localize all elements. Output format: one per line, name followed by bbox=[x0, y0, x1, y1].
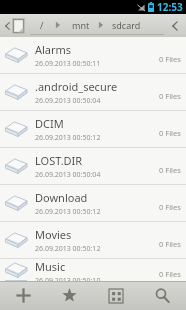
staticText: 0 Files bbox=[159, 239, 181, 249]
button[interactable]: .android_secure bbox=[0, 74, 186, 110]
staticText: 0 Files bbox=[159, 91, 181, 101]
staticText: 26.09.2013 00:50:10 bbox=[35, 276, 101, 281]
button[interactable]: Bookmarks bbox=[46, 281, 92, 310]
button[interactable]: Home bbox=[0, 14, 30, 37]
staticText: 0 Files bbox=[159, 128, 181, 138]
staticText: Alarms bbox=[35, 42, 72, 57]
staticText: 0 Files bbox=[159, 165, 181, 175]
button[interactable]: Download bbox=[0, 185, 186, 221]
staticText: Music bbox=[35, 259, 66, 274]
button[interactable]: LOST.DIR bbox=[0, 148, 186, 184]
staticText: LOST.DIR bbox=[35, 153, 83, 168]
staticText: DCIM bbox=[35, 116, 64, 131]
button[interactable]: Search bbox=[139, 281, 186, 310]
button[interactable]: sdcard bbox=[112, 19, 141, 31]
staticText: .android_secure bbox=[35, 79, 118, 94]
staticText: 26.09.2013 00:50:11 bbox=[35, 59, 101, 69]
button[interactable]: View mode bbox=[92, 281, 139, 310]
staticText: 12:53 bbox=[157, 0, 183, 14]
staticText: 0 Files bbox=[159, 269, 181, 279]
staticText: 0 Files bbox=[159, 54, 181, 64]
staticText: 26.09.2013 00:50:04 bbox=[35, 170, 101, 180]
staticText: 26.09.2013 00:50:12 bbox=[35, 207, 101, 217]
staticText: 26.09.2013 00:50:12 bbox=[35, 244, 101, 254]
staticText: 26.09.2013 00:50:04 bbox=[35, 96, 101, 106]
staticText: 26.09.2013 00:50:12 bbox=[35, 133, 101, 143]
staticText: Download bbox=[35, 190, 88, 205]
staticText: 0 Files bbox=[159, 202, 181, 212]
button[interactable]: Add bbox=[0, 281, 46, 310]
button[interactable]: DCIM bbox=[0, 111, 186, 147]
staticText: Movies bbox=[35, 227, 72, 242]
button[interactable]: mnt bbox=[72, 19, 90, 31]
button[interactable]: / bbox=[40, 19, 44, 31]
button[interactable]: Movies bbox=[0, 222, 186, 258]
button[interactable]: Music bbox=[0, 259, 186, 281]
button[interactable]: Alarms bbox=[0, 37, 186, 73]
button[interactable]: Back bbox=[164, 14, 186, 37]
